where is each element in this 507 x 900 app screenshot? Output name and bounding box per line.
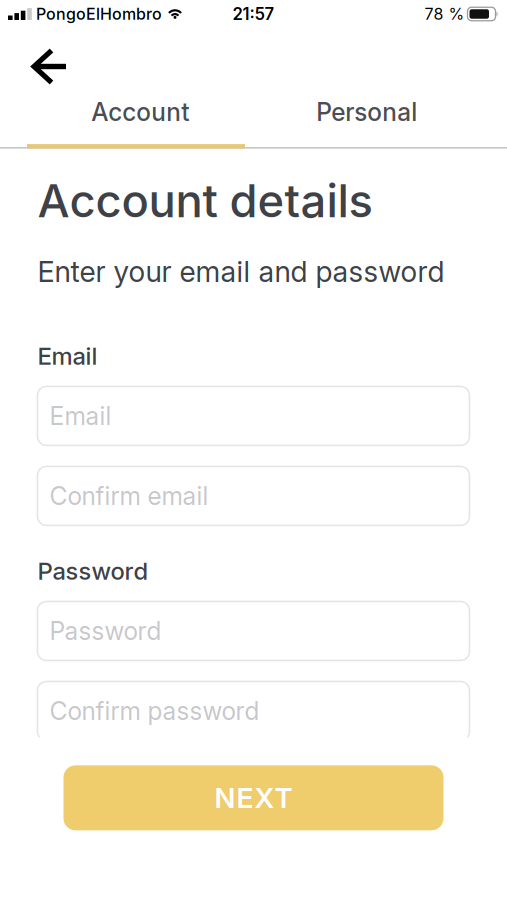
button[interactable]: Back — [32, 49, 68, 84]
staticText: 78 % — [424, 4, 464, 24]
button[interactable]: Email — [37, 386, 469, 445]
staticText: Email — [37, 341, 97, 370]
staticText: Password — [37, 556, 148, 585]
staticText: Email — [49, 401, 111, 431]
staticText: Enter your email and password — [37, 254, 444, 289]
button[interactable]: Confirm password — [37, 681, 469, 740]
button[interactable]: NEXT — [63, 765, 443, 830]
staticText: Password — [49, 616, 161, 646]
button[interactable]: Confirm email — [37, 466, 469, 525]
staticText: NEXT — [214, 781, 292, 815]
staticText: Confirm password — [49, 696, 259, 726]
button[interactable]: Account — [27, 97, 253, 127]
staticText: Account details — [37, 173, 372, 228]
staticText: 21:57 — [232, 4, 274, 24]
staticText: Personal — [316, 97, 417, 127]
staticText: Confirm email — [49, 481, 208, 511]
button[interactable]: Password — [37, 601, 469, 660]
button[interactable]: Personal — [253, 97, 480, 127]
staticText: Account — [91, 97, 189, 127]
staticText: PongoElHombro — [36, 4, 162, 24]
